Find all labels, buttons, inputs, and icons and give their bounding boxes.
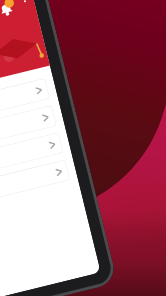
button[interactable]: Notifications: [0, 0, 17, 20]
button[interactable]: [0, 160, 70, 208]
button[interactable]: [0, 132, 63, 181]
button[interactable]: [0, 78, 50, 127]
button[interactable]: [0, 105, 57, 154]
button[interactable]: More options: [17, 0, 31, 5]
